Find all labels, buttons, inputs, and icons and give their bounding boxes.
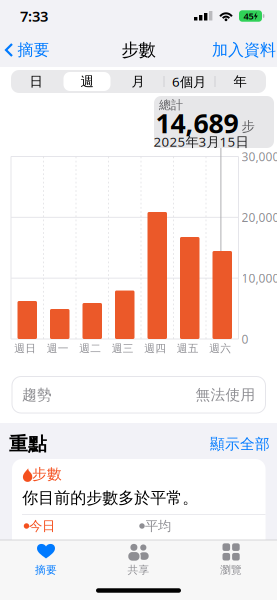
staticText: 週一 [47, 342, 69, 355]
staticText: 月 [131, 73, 144, 90]
button[interactable]: 月 [113, 70, 163, 93]
staticText: 週二 [79, 342, 101, 355]
staticText: 年 [233, 73, 246, 90]
staticText: 週六 [209, 342, 231, 355]
staticText: 步 [241, 118, 254, 135]
staticText: 步數 [121, 39, 155, 61]
staticText: 週四 [144, 342, 166, 355]
staticText: 週五 [177, 342, 199, 355]
staticText: 瀏覽 [220, 563, 242, 576]
staticText: 45 [243, 10, 253, 22]
staticText: 總計 [159, 98, 183, 112]
button[interactable]: 日 [11, 70, 61, 93]
staticText: 2025年3月15日 [153, 133, 248, 150]
staticText: 重點 [9, 432, 47, 455]
button[interactable]: 瀏覽 [220, 543, 242, 576]
staticText: 無法使用 [195, 386, 255, 404]
staticText: 平均 [145, 518, 171, 534]
button[interactable] [12, 459, 265, 554]
button[interactable]: 共享 [127, 543, 149, 576]
button[interactable]: 6個月 [164, 70, 214, 93]
staticText: 摘要 [35, 563, 57, 576]
staticText: 週日 [14, 342, 36, 355]
staticText: 週 [80, 73, 93, 90]
button[interactable]: 摘要 [35, 543, 57, 576]
button[interactable]: 顯示全部 [210, 435, 270, 453]
staticText: 步數 [32, 465, 62, 483]
staticText: 週三 [112, 342, 134, 355]
button[interactable]: 返回摘要 [4, 40, 49, 60]
staticText: 30,000 [241, 148, 277, 164]
staticText: 你目前的步數多於平常。 [22, 488, 198, 508]
staticText: 14,689 [155, 105, 238, 141]
button[interactable]: 趨勢 [12, 376, 265, 413]
staticText: 7:33 [20, 6, 48, 26]
staticText: 日 [29, 73, 42, 90]
staticText: 今日 [29, 518, 55, 534]
button[interactable]: 週 [62, 70, 112, 93]
staticText: 趨勢 [22, 386, 52, 404]
staticText: 共享 [127, 563, 149, 576]
staticText: 10,000 [241, 270, 277, 286]
staticText: 加入資料 [212, 40, 276, 60]
staticText: 6個月 [172, 73, 206, 90]
button[interactable]: 年 [215, 70, 265, 93]
button[interactable]: 加入資料 [212, 40, 276, 60]
staticText: 摘要 [17, 40, 49, 60]
staticText: 顯示全部 [210, 435, 270, 453]
staticText: 20,000 [241, 209, 277, 225]
staticText: 0 [241, 331, 248, 347]
